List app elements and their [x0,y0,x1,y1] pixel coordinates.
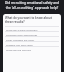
button[interactable]: What changed the most [5,36,59,41]
button[interactable]: Show me the sources [5,46,59,51]
staticText: What changed the most [6,38,35,41]
button[interactable]: Show me a quick summary [5,26,59,31]
staticText: Did recruiting emotional safety and the … [3,1,61,9]
staticText: Show me the sources [6,48,31,51]
staticText: What do you want to know about these res… [5,16,59,24]
button[interactable]: Suggest the next steps [5,41,59,46]
staticText: Compare both approaches [6,33,38,36]
button[interactable]: Compare both approaches [5,31,59,36]
staticText: Show me a quick summary [6,28,38,31]
staticText: Suggest the next steps [6,43,33,46]
